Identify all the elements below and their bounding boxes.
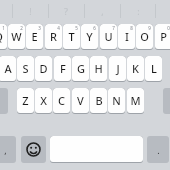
staticText: T <box>68 29 75 44</box>
button[interactable]: G <box>72 56 89 82</box>
staticText: X <box>40 93 47 108</box>
button[interactable]: T <box>63 24 80 50</box>
staticText: 6 <box>93 25 96 31</box>
staticText: 1 <box>2 25 5 31</box>
button[interactable]: P <box>155 24 170 50</box>
staticText: 9 <box>148 25 151 31</box>
button[interactable]: S <box>17 56 34 82</box>
button[interactable]: Q <box>0 24 7 50</box>
staticText: J <box>116 61 120 76</box>
staticText: C <box>58 93 65 108</box>
staticText: G <box>77 61 85 76</box>
staticText: P <box>160 29 167 44</box>
staticText: 8 <box>130 25 133 31</box>
staticText: R <box>50 29 57 44</box>
button[interactable]: X <box>35 88 52 114</box>
button[interactable]: Space <box>50 136 143 163</box>
button[interactable]: N <box>108 88 125 114</box>
staticText: ! <box>29 5 32 17</box>
staticText: W <box>11 29 22 44</box>
staticText: Z <box>22 93 29 108</box>
staticText: I <box>125 29 129 44</box>
staticText: , <box>4 144 7 156</box>
button[interactable]: C <box>53 88 70 114</box>
staticText: K <box>132 61 139 76</box>
staticText: M <box>130 93 141 108</box>
button[interactable]: M <box>127 88 144 114</box>
button[interactable]: O <box>136 24 153 50</box>
staticText: D <box>39 61 48 76</box>
staticText: 2 <box>20 25 23 31</box>
staticText: F <box>60 61 66 76</box>
staticText: 3 <box>38 25 41 31</box>
button[interactable]: D <box>35 56 52 82</box>
staticText: . <box>157 144 160 156</box>
button[interactable]: Emoji <box>21 136 46 163</box>
staticText: , <box>101 5 104 17</box>
button[interactable]: K <box>127 56 144 82</box>
staticText: 7 <box>112 25 115 31</box>
button[interactable]: I <box>118 24 135 50</box>
button[interactable]: R <box>45 24 62 50</box>
staticText: 5 <box>75 25 78 31</box>
staticText: B <box>95 93 103 108</box>
button[interactable]: F <box>54 56 71 82</box>
staticText: O <box>140 29 149 44</box>
button[interactable]: J <box>109 56 126 82</box>
staticText: 0 <box>167 25 170 31</box>
staticText: : <box>137 5 140 17</box>
staticText: U <box>104 29 113 44</box>
button[interactable]: Comma <box>0 136 16 163</box>
staticText: A <box>4 61 12 76</box>
staticText: ? <box>64 5 68 17</box>
staticText: H <box>94 61 103 76</box>
staticText: N <box>112 93 121 108</box>
staticText: 4 <box>57 25 60 31</box>
staticText: E <box>31 29 38 44</box>
button[interactable]: Y <box>81 24 98 50</box>
button[interactable]: B <box>90 88 107 114</box>
staticText: S <box>22 61 29 76</box>
staticText: V <box>77 93 84 108</box>
staticText: L <box>151 61 157 76</box>
button[interactable]: W <box>8 24 25 50</box>
button[interactable]: L <box>145 56 162 82</box>
button[interactable]: U <box>100 24 117 50</box>
staticText: Q <box>0 29 3 44</box>
button[interactable]: E <box>26 24 43 50</box>
button[interactable]: Period <box>147 136 169 163</box>
button[interactable]: V <box>72 88 89 114</box>
staticText: Y <box>86 29 93 44</box>
button[interactable]: Z <box>17 88 34 114</box>
button[interactable]: H <box>90 56 107 82</box>
button[interactable]: A <box>0 56 16 82</box>
